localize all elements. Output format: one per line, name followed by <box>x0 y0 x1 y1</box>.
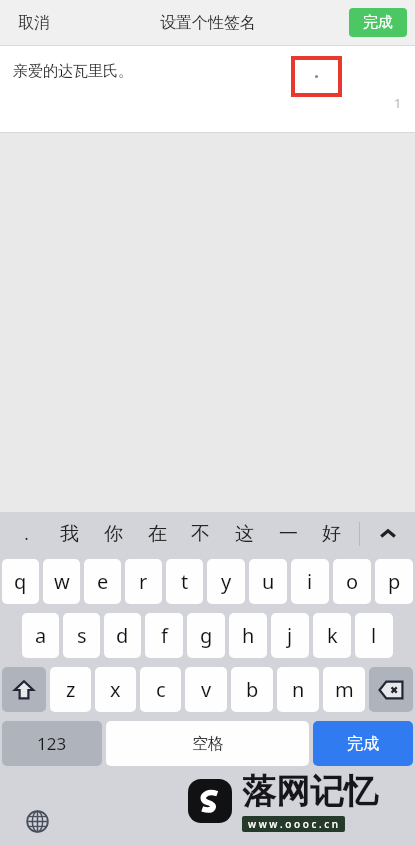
button[interactable]: 一 <box>270 512 306 555</box>
button[interactable]: . <box>8 512 44 555</box>
staticText: l <box>371 622 377 649</box>
staticText: o <box>346 568 359 595</box>
button[interactable]: 不 <box>182 512 218 555</box>
staticText: 亲爱的达瓦里氏。 <box>13 62 133 81</box>
staticText: 你 <box>104 522 123 546</box>
staticText: d <box>116 622 129 649</box>
staticText: 一 <box>279 522 298 546</box>
button[interactable]: Shift <box>2 667 46 712</box>
staticText: 设置个性签名 <box>160 13 256 33</box>
staticText: n <box>292 676 305 703</box>
button[interactable]: y <box>207 559 245 604</box>
staticText: 我 <box>60 522 79 546</box>
button[interactable]: p <box>375 559 413 604</box>
staticText: a <box>35 622 47 649</box>
button[interactable]: w <box>43 559 80 604</box>
button[interactable]: u <box>249 559 287 604</box>
staticText: k <box>327 622 338 649</box>
button[interactable]: f <box>145 613 183 658</box>
button[interactable]: s <box>63 613 100 658</box>
staticText: x <box>110 676 121 703</box>
button[interactable]: 取消 <box>14 7 54 39</box>
button[interactable]: 在 <box>139 512 175 555</box>
staticText: c <box>156 676 166 703</box>
button[interactable]: a <box>22 613 59 658</box>
staticText: w <box>54 568 70 595</box>
staticText: 不 <box>191 522 210 546</box>
button[interactable]: x <box>95 667 136 712</box>
button[interactable]: c <box>140 667 181 712</box>
button[interactable]: r <box>125 559 162 604</box>
button[interactable]: 空格 <box>106 721 309 766</box>
button[interactable]: b <box>231 667 273 712</box>
staticText: e <box>97 568 109 595</box>
button[interactable]: Backspace <box>369 667 413 712</box>
button[interactable]: 完成 <box>349 8 407 37</box>
button[interactable]: Switch input language <box>18 802 56 840</box>
button[interactable]: 123 <box>2 721 102 766</box>
staticText: . <box>24 522 29 545</box>
button[interactable]: n <box>277 667 319 712</box>
button[interactable]: d <box>104 613 141 658</box>
button[interactable]: v <box>185 667 227 712</box>
button[interactable]: 完成 <box>313 721 413 766</box>
button[interactable]: m <box>323 667 365 712</box>
staticText: j <box>287 622 293 649</box>
staticText: 完成 <box>347 734 379 754</box>
staticText: z <box>66 676 76 703</box>
staticText: 取消 <box>18 13 50 33</box>
staticText: 123 <box>37 732 67 755</box>
button[interactable]: 好 <box>313 512 349 555</box>
staticText: v <box>201 676 212 703</box>
staticText: 这 <box>235 522 254 546</box>
button[interactable]: 你 <box>95 512 131 555</box>
button[interactable]: e <box>84 559 121 604</box>
staticText: 1 <box>394 94 402 112</box>
button[interactable]: 我 <box>51 512 87 555</box>
button[interactable]: o <box>333 559 371 604</box>
staticText: q <box>14 568 27 595</box>
staticText: w w w . o o o c . c n <box>248 817 339 831</box>
button[interactable]: k <box>313 613 351 658</box>
button[interactable]: 亲爱的达瓦里氏。 <box>0 46 415 132</box>
button[interactable]: t <box>166 559 203 604</box>
staticText: 落网记忆 <box>242 770 378 813</box>
button[interactable]: g <box>187 613 225 658</box>
button[interactable]: q <box>2 559 39 604</box>
staticText: r <box>139 568 148 595</box>
staticText: g <box>200 622 213 649</box>
staticText: t <box>181 568 189 595</box>
staticText: 好 <box>322 522 341 546</box>
staticText: u <box>262 568 275 595</box>
button[interactable]: l <box>355 613 393 658</box>
staticText: f <box>161 622 168 649</box>
staticText: p <box>388 568 401 595</box>
staticText: m <box>335 676 354 703</box>
button[interactable]: i <box>291 559 329 604</box>
staticText: 在 <box>148 522 167 546</box>
staticText: s <box>77 622 87 649</box>
staticText: h <box>242 622 255 649</box>
button[interactable]: Expand candidates <box>360 512 415 555</box>
staticText: 完成 <box>363 13 393 32</box>
button[interactable]: j <box>271 613 309 658</box>
staticText: b <box>246 676 259 703</box>
button[interactable]: 这 <box>226 512 262 555</box>
staticText: y <box>221 568 232 595</box>
staticText: 空格 <box>192 734 224 754</box>
button[interactable]: h <box>229 613 267 658</box>
staticText: i <box>307 568 313 595</box>
button[interactable]: z <box>50 667 91 712</box>
